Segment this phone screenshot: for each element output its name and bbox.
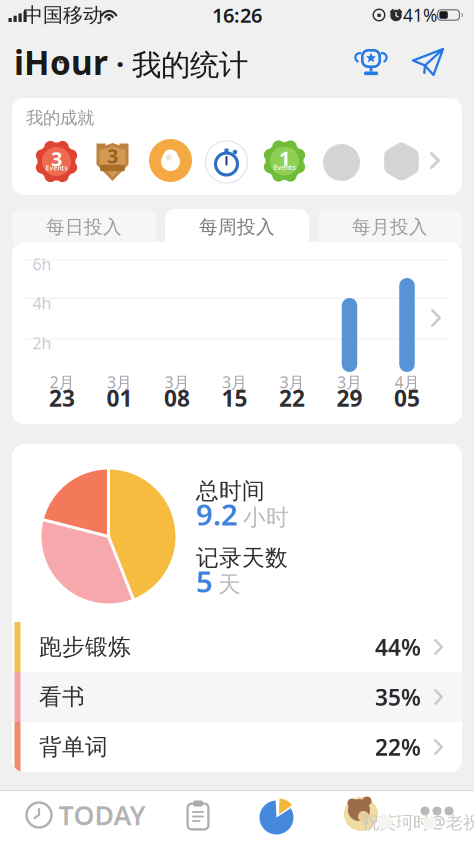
- staticText: 29: [336, 383, 362, 413]
- button[interactable]: Today: [26, 797, 145, 833]
- staticText: 01: [106, 383, 132, 413]
- button[interactable]: 事项: [185, 799, 210, 830]
- staticText: 16:26: [212, 2, 262, 28]
- button[interactable]: 背单词: [12, 722, 462, 772]
- staticText: 3: [51, 145, 62, 172]
- staticText: 2月: [49, 371, 74, 393]
- staticText: 每周投入: [199, 215, 275, 238]
- button[interactable]: 分享: [408, 42, 448, 82]
- staticText: 22: [279, 383, 305, 413]
- staticText: 41%: [403, 3, 437, 26]
- staticText: 中国移动: [23, 3, 103, 27]
- staticText: 6h: [32, 253, 51, 275]
- button[interactable]: 统计: [259, 798, 295, 834]
- staticText: 15: [221, 383, 247, 413]
- button[interactable]: 看书: [12, 672, 462, 722]
- staticText: 小时: [243, 504, 289, 531]
- button[interactable]: 每周投入: [165, 209, 309, 244]
- staticText: 记录天数: [196, 544, 288, 572]
- staticText: 35%: [375, 682, 421, 712]
- button[interactable]: 成就: [351, 42, 391, 82]
- staticText: iHour · 我的统计: [14, 40, 248, 84]
- button[interactable]: 每周投入详情: [12, 242, 462, 424]
- staticText: 08: [164, 383, 190, 413]
- staticText: 23: [49, 383, 75, 413]
- staticText: TODAY: [58, 797, 145, 833]
- staticText: 44%: [375, 632, 421, 662]
- staticText: 3月: [279, 371, 304, 393]
- staticText: 4h: [32, 292, 51, 314]
- staticText: 05: [394, 383, 420, 413]
- staticText: 祝英珂时@老祝: [362, 810, 474, 833]
- staticText: 天: [218, 571, 241, 598]
- button[interactable]: 跑步锻炼: [12, 622, 462, 672]
- staticText: 总时间: [196, 477, 265, 505]
- staticText: 跑步锻炼: [39, 633, 131, 661]
- button[interactable]: 我的成就: [12, 98, 462, 195]
- button[interactable]: 设置: [348, 802, 374, 827]
- button[interactable]: 每日投入: [12, 209, 156, 244]
- staticText: 1: [279, 145, 290, 171]
- staticText: Events: [273, 163, 295, 172]
- staticText: 3月: [337, 371, 362, 393]
- staticText: 每月投入: [352, 215, 428, 238]
- staticText: 3月: [107, 371, 132, 393]
- staticText: 看书: [39, 683, 85, 711]
- staticText: 背单词: [39, 733, 108, 761]
- staticText: 3: [107, 142, 118, 169]
- staticText: 4月: [394, 371, 419, 393]
- staticText: Events: [45, 164, 67, 172]
- staticText: 每日投入: [46, 215, 122, 238]
- staticText: 我的成就: [26, 107, 94, 129]
- staticText: 9.2: [196, 494, 238, 533]
- staticText: 3月: [164, 371, 189, 393]
- button[interactable]: 每月投入: [318, 209, 462, 244]
- staticText: 22%: [375, 732, 421, 762]
- staticText: 2h: [32, 332, 51, 354]
- staticText: 3月: [222, 371, 247, 393]
- staticText: 5: [196, 561, 213, 600]
